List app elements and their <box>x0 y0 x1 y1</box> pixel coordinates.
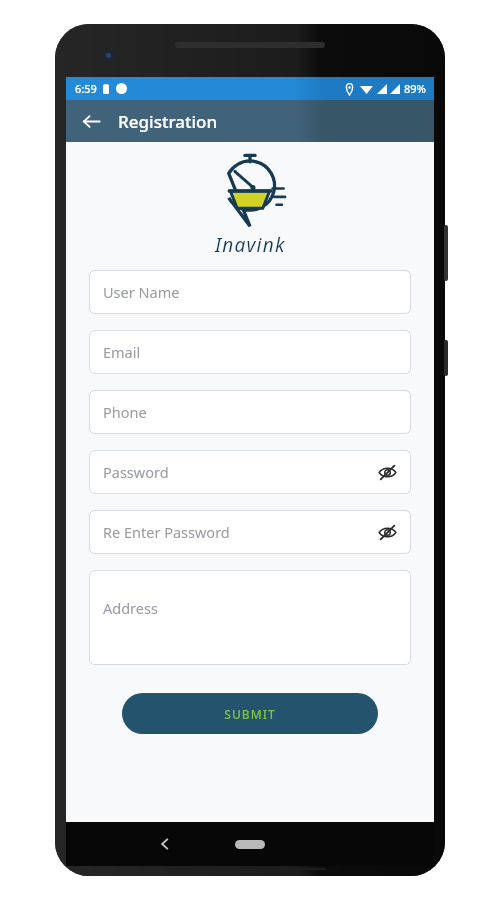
staticText: SUBMIT <box>224 706 276 722</box>
button[interactable]: Address <box>89 570 411 665</box>
button[interactable]: Back <box>142 822 188 866</box>
button[interactable]: SUBMIT <box>122 693 378 734</box>
staticText: Address <box>103 598 158 618</box>
staticText: 6:59 <box>75 81 97 96</box>
button[interactable]: User Name <box>89 270 411 314</box>
staticText: Re Enter Password <box>103 522 230 542</box>
staticText: Registration <box>118 110 218 133</box>
button[interactable]: Home <box>235 840 265 849</box>
button[interactable]: Re Enter Password <box>89 510 411 554</box>
staticText: Inavink <box>215 232 286 258</box>
button[interactable]: Password <box>89 450 411 494</box>
button[interactable]: Phone <box>89 390 411 434</box>
staticText: Password <box>103 462 169 482</box>
staticText: 89% <box>404 81 426 96</box>
button[interactable]: Toggle password visibility <box>371 456 403 488</box>
button[interactable]: Email <box>89 330 411 374</box>
staticText: Phone <box>103 402 147 422</box>
button[interactable]: Back <box>72 102 110 140</box>
staticText: Email <box>103 342 141 362</box>
staticText: User Name <box>103 282 180 302</box>
button[interactable]: Toggle password visibility <box>371 516 403 548</box>
